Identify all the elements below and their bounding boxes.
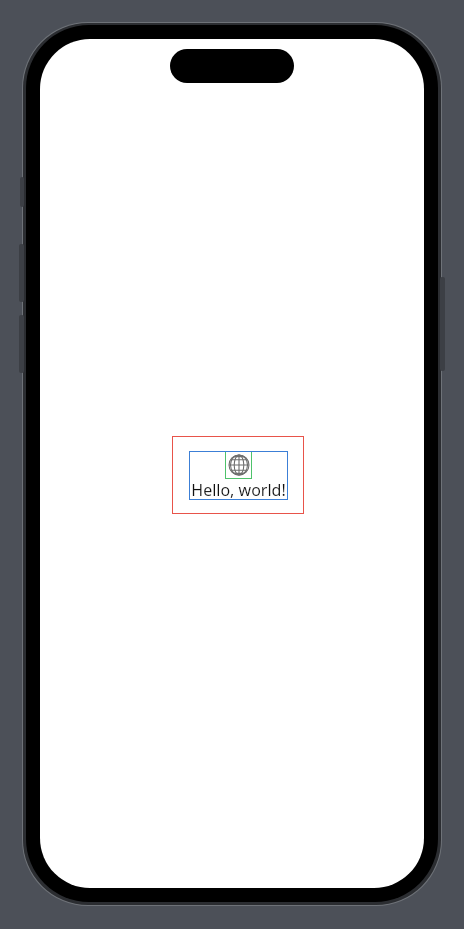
- staticText: Hello, world!: [189, 479, 288, 500]
- other: Globe: [228, 454, 250, 476]
- button[interactable]: Globe: [172, 436, 304, 514]
